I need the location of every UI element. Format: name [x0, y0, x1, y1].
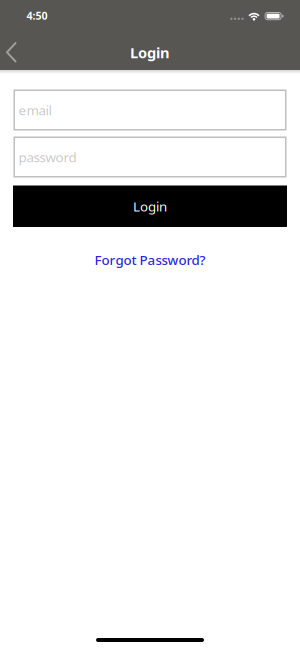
- button[interactable]: Login: [0, 185, 300, 227]
- staticText: 4:50: [26, 8, 47, 23]
- staticText: Login: [133, 197, 167, 215]
- staticText: Forgot Password?: [94, 251, 205, 269]
- button[interactable]: Forgot Password?: [94, 251, 205, 269]
- staticText: Login: [130, 43, 170, 62]
- staticText: email: [18, 101, 51, 119]
- staticText: password: [18, 148, 76, 166]
- button[interactable]: Back: [0, 35, 27, 70]
